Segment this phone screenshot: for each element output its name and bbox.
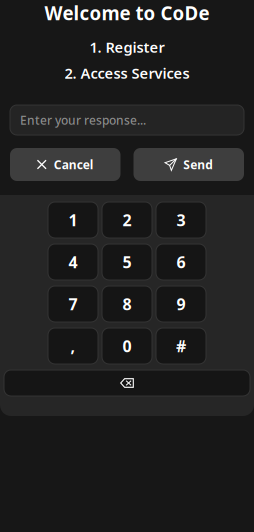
button[interactable]: 0 xyxy=(102,328,152,364)
staticText: Cancel xyxy=(54,156,94,172)
button[interactable]: Send xyxy=(133,148,244,181)
staticText: Welcome to CoDe xyxy=(44,1,209,25)
button[interactable]: 5 xyxy=(102,244,152,280)
staticText: 5 xyxy=(122,251,131,273)
staticText: 8 xyxy=(122,293,131,315)
staticText: Enter your response... xyxy=(20,112,146,128)
button[interactable]: Delete xyxy=(4,370,250,396)
button[interactable]: 3 xyxy=(156,202,206,238)
staticText: # xyxy=(176,335,186,357)
button[interactable]: , xyxy=(48,328,98,364)
button[interactable]: 7 xyxy=(48,286,98,322)
staticText: Send xyxy=(183,156,213,172)
staticText: 0 xyxy=(122,335,131,357)
button[interactable]: # xyxy=(156,328,206,364)
staticText: 2 xyxy=(122,209,131,231)
staticText: 1 xyxy=(68,209,77,231)
button[interactable]: Cancel xyxy=(10,148,120,181)
staticText: , xyxy=(70,335,75,357)
button[interactable]: 2 xyxy=(102,202,152,238)
staticText: 4 xyxy=(68,251,77,273)
button[interactable]: 6 xyxy=(156,244,206,280)
button[interactable]: 4 xyxy=(48,244,98,280)
staticText: 1. Register xyxy=(89,37,164,57)
staticText: 6 xyxy=(176,251,185,273)
staticText: 9 xyxy=(176,293,185,315)
staticText: 7 xyxy=(68,293,77,315)
button[interactable]: 8 xyxy=(102,286,152,322)
button[interactable]: 1 xyxy=(48,202,98,238)
staticText: 3 xyxy=(176,209,185,231)
button[interactable]: 9 xyxy=(156,286,206,322)
staticText: 2. Access Services xyxy=(64,63,189,83)
